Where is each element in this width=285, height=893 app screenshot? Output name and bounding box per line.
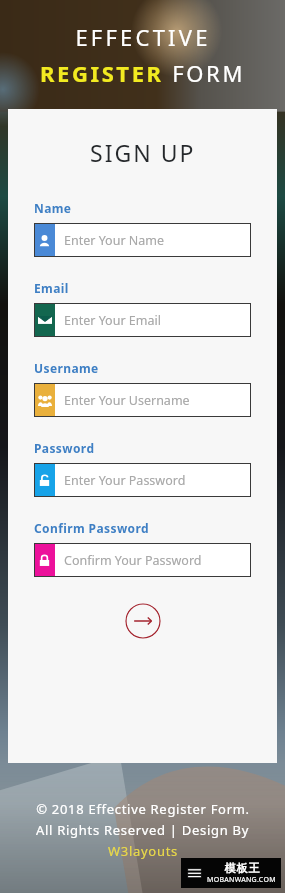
button[interactable]: Confirm Your Password [34, 543, 251, 577]
staticText: Email [34, 280, 69, 296]
button[interactable]: W3layouts [108, 842, 178, 860]
staticText: Enter Your Username [64, 392, 190, 409]
staticText: Confirm Your Password [64, 552, 202, 569]
staticText: FORM [164, 58, 245, 88]
staticText: MOBANWANG.COM [207, 875, 276, 885]
button[interactable]: Enter Your Username [34, 383, 251, 417]
button[interactable]: Submit [125, 603, 161, 639]
staticText: © 2018 Effective Register Form. [36, 800, 250, 818]
staticText: Username [34, 360, 99, 376]
button[interactable]: Enter Your Password [34, 463, 251, 497]
staticText: EFFECTIVE [75, 22, 211, 52]
staticText: Confirm Password [34, 520, 149, 536]
staticText: All Rights Reserved | Design By [36, 821, 249, 839]
staticText: Enter Your Name [64, 232, 165, 249]
button[interactable]: Enter Your Email [34, 303, 251, 337]
staticText: Password [34, 440, 95, 456]
button[interactable]: Enter Your Name [34, 223, 251, 257]
staticText: SIGN UP [90, 137, 196, 168]
staticText: 模板王 [224, 861, 260, 875]
staticText: REGISTER [40, 58, 164, 88]
staticText: Enter Your Password [64, 472, 186, 489]
staticText: Name [34, 200, 72, 216]
staticText: Enter Your Email [64, 312, 161, 329]
